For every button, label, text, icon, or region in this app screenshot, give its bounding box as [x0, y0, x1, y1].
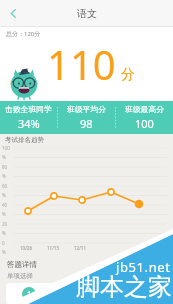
- staticText: 分: [121, 66, 135, 84]
- staticText: 60 %: [2, 183, 8, 199]
- staticText: 80 %: [2, 164, 8, 180]
- button[interactable]: 1: [6, 283, 167, 304]
- staticText: 1: [27, 289, 32, 300]
- staticText: 100: [135, 116, 154, 131]
- staticText: 12/11: [74, 245, 86, 251]
- button[interactable]: 班级平均分: [58, 101, 115, 134]
- staticText: 脚本之家: [76, 272, 172, 302]
- button[interactable]: Back: [0, 0, 26, 26]
- staticText: 20 %: [2, 221, 8, 237]
- staticText: 100 %: [2, 145, 10, 161]
- staticText: 11/15: [47, 245, 59, 251]
- staticText: jb51.net: [116, 258, 171, 276]
- staticText: 10/26: [20, 245, 32, 251]
- staticText: 班级最高分: [125, 104, 164, 114]
- button[interactable]: 击败全班同学: [0, 101, 57, 134]
- staticText: 总分：120分: [6, 30, 41, 38]
- staticText: 语文: [77, 7, 97, 20]
- staticText: 40 %: [2, 202, 8, 218]
- staticText: 考试排名趋势: [5, 136, 44, 144]
- staticText: 0 %: [2, 240, 6, 256]
- staticText: 110: [47, 37, 116, 91]
- staticText: 单项选择: [7, 272, 33, 280]
- staticText: 98: [80, 116, 93, 131]
- staticText: 34%: [18, 116, 40, 131]
- button[interactable]: 班级最高分: [116, 101, 173, 134]
- staticText: 班级平均分: [67, 104, 106, 114]
- staticText: 击败全班同学: [5, 104, 52, 114]
- staticText: 答题详情: [7, 260, 37, 269]
